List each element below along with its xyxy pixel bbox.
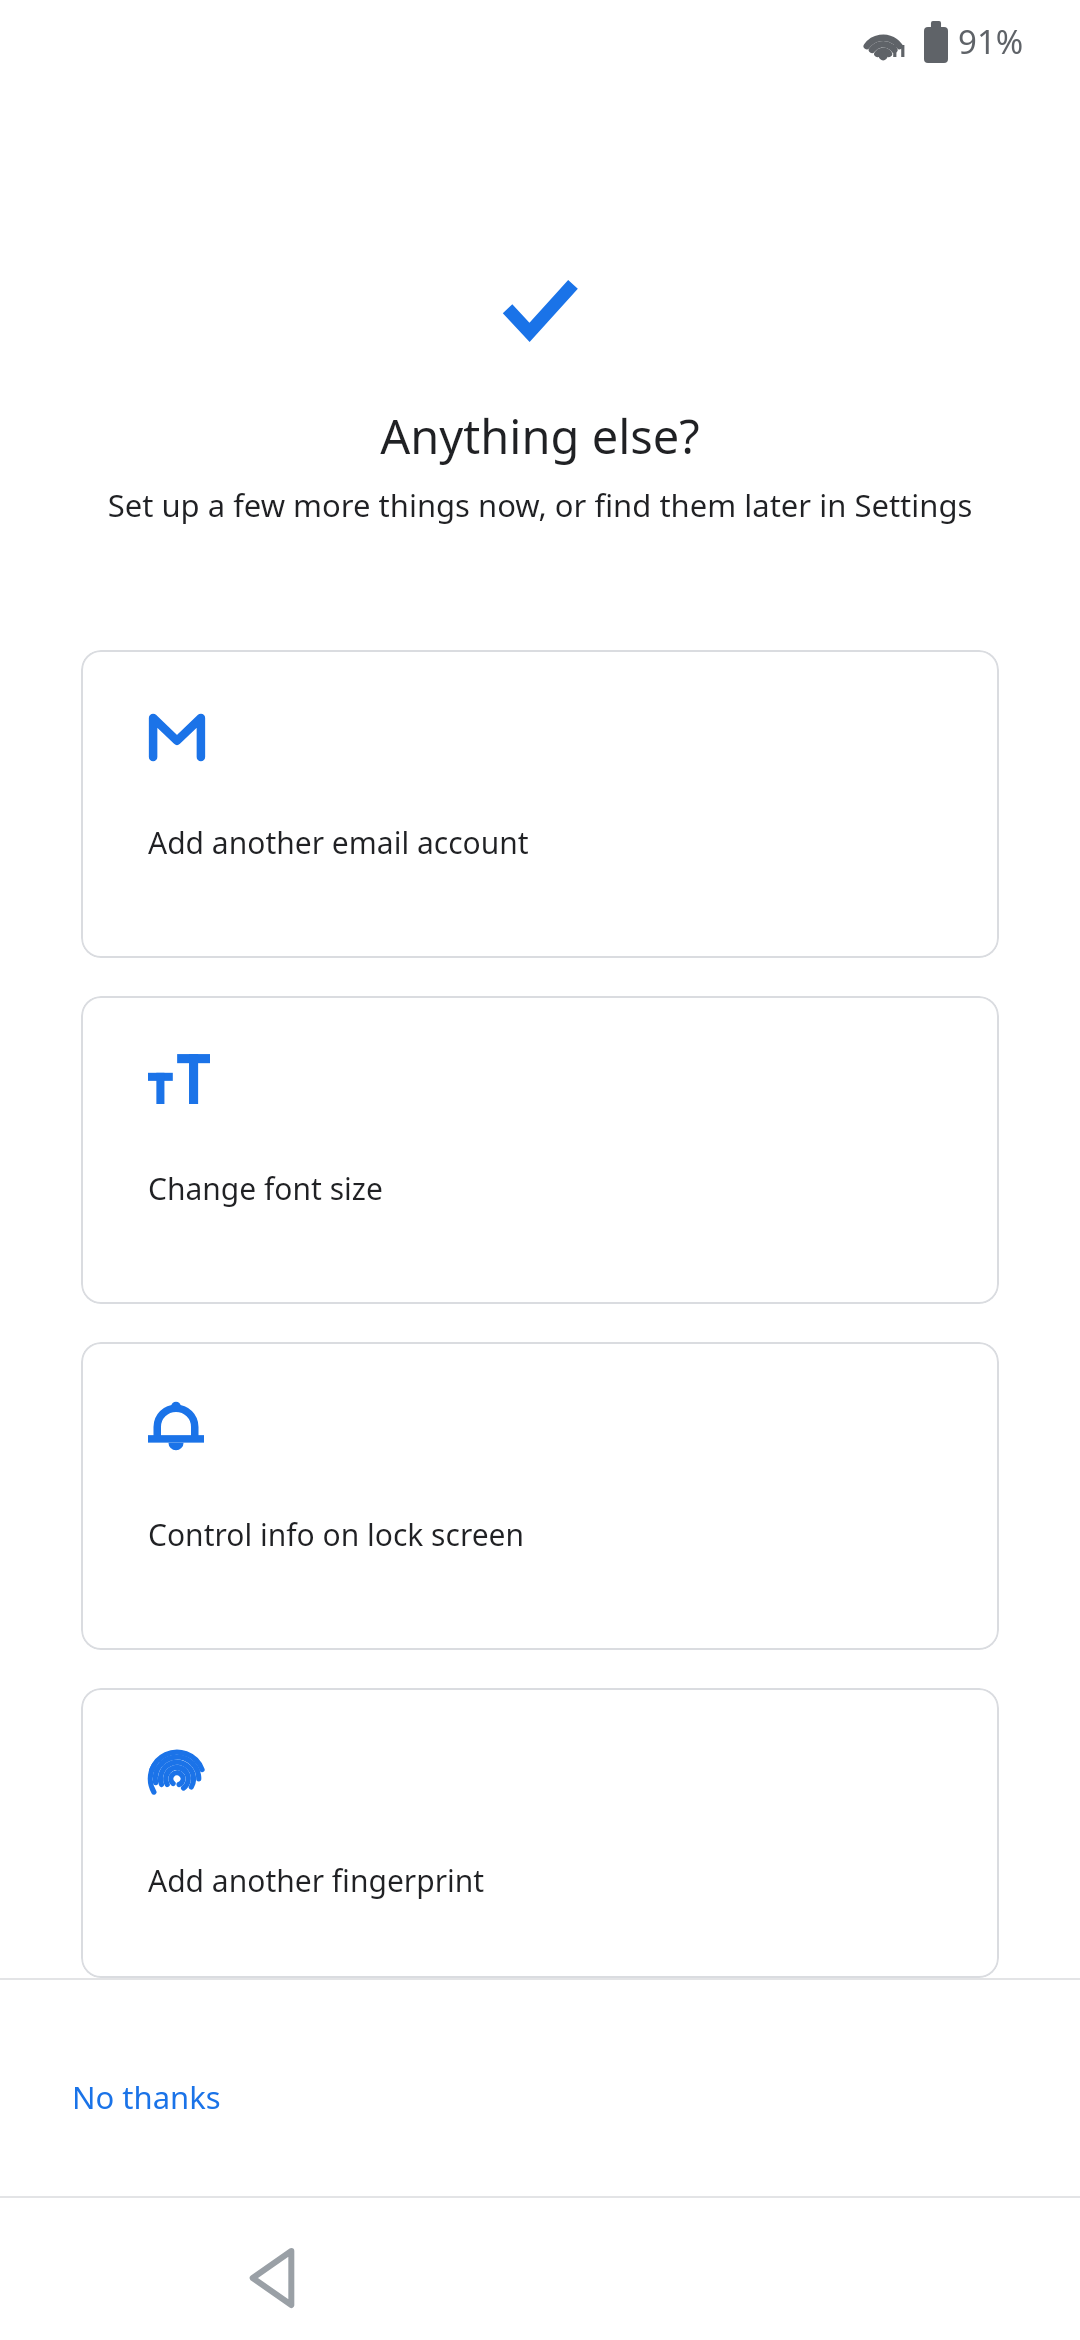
button[interactable]: Add another fingerprint: [81, 1688, 999, 1978]
staticText: Add another email account: [148, 822, 529, 863]
button[interactable]: No thanks: [50, 2058, 243, 2136]
staticText: Set up a few more things now, or find th…: [70, 484, 1010, 526]
staticText: 91%: [958, 19, 1024, 64]
button[interactable]: Add another email account: [81, 650, 999, 958]
button[interactable]: Back: [212, 2218, 332, 2338]
staticText: Anything else?: [380, 404, 700, 468]
button[interactable]: Change font size: [81, 996, 999, 1304]
staticText: Control info on lock screen: [148, 1514, 525, 1555]
staticText: Add another fingerprint: [148, 1860, 485, 1901]
staticText: Change font size: [148, 1168, 383, 1209]
staticText: No thanks: [72, 2076, 221, 2118]
button[interactable]: Control info on lock screen: [81, 1342, 999, 1650]
